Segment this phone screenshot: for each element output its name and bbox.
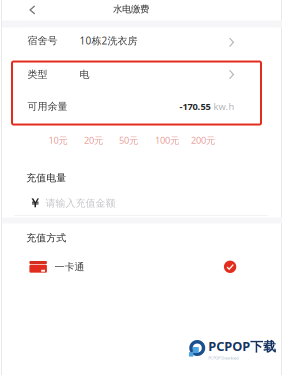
- button[interactable]: 一卡通: [29, 255, 269, 279]
- staticText: kw.h: [213, 100, 234, 113]
- button[interactable]: 50元: [119, 134, 155, 146]
- staticText: PCPOP下载: [208, 337, 276, 355]
- staticText: 一卡通: [54, 260, 84, 273]
- staticText: 充值方式: [26, 232, 66, 244]
- staticText: 电: [79, 68, 89, 81]
- staticText: 10栋2洗衣房: [79, 34, 137, 47]
- button[interactable]: 10元: [48, 134, 84, 146]
- staticText: 20元: [84, 134, 103, 146]
- staticText: 200元: [191, 134, 215, 146]
- button[interactable]: 类型: [27, 61, 244, 87]
- button[interactable]: 宿舍号: [27, 28, 267, 54]
- staticText: -170.55: [179, 100, 210, 113]
- button[interactable]: 200元: [191, 134, 217, 146]
- staticText: 类型: [27, 68, 47, 81]
- staticText: PCPOP Download: [208, 355, 238, 361]
- button[interactable]: Back: [20, 0, 44, 20]
- staticText: 充值电量: [26, 172, 66, 184]
- button[interactable]: 20元: [84, 134, 119, 146]
- staticText: 水电缴费: [113, 3, 149, 15]
- staticText: 10元: [48, 134, 67, 146]
- staticText: 可用余量: [27, 100, 67, 113]
- staticText: 100元: [155, 134, 179, 146]
- staticText: 宿舍号: [27, 34, 57, 47]
- staticText: ￥: [29, 195, 41, 211]
- button[interactable]: 100元: [155, 134, 191, 146]
- staticText: 50元: [119, 134, 138, 146]
- staticText: 请输入充值金额: [45, 197, 115, 209]
